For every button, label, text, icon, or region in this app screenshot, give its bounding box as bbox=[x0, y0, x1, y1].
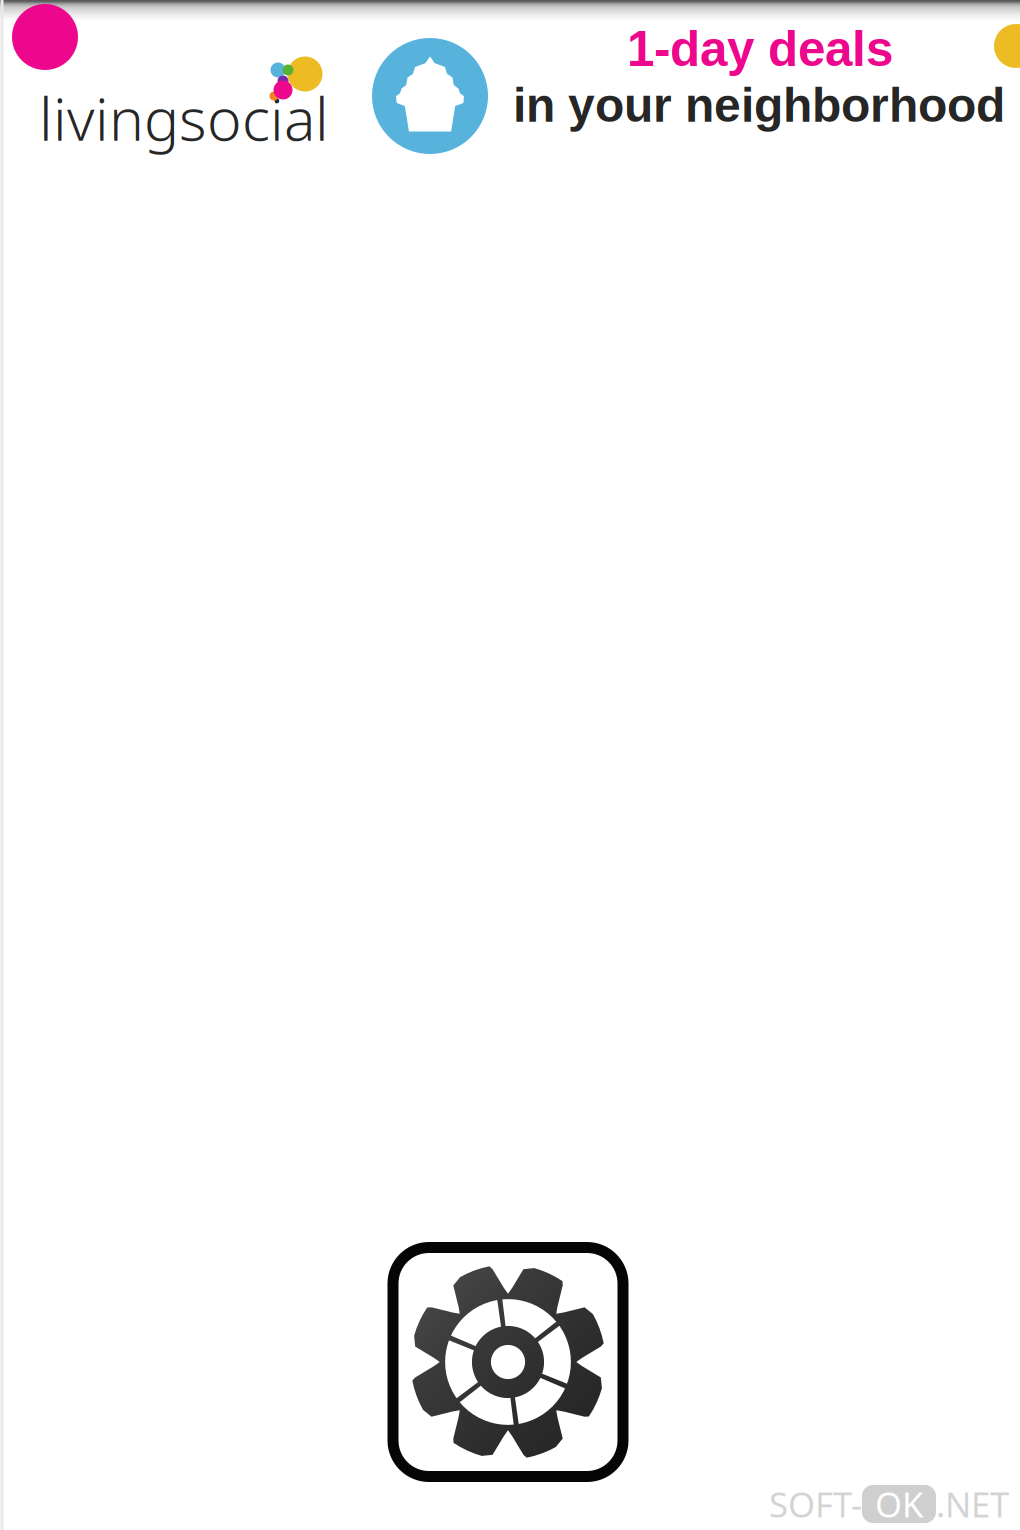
staticText: 1-day deals bbox=[627, 21, 893, 76]
staticText: OK bbox=[875, 1481, 923, 1527]
staticText: in your neighborhood bbox=[513, 78, 1005, 132]
staticText: livingsocial bbox=[39, 79, 329, 157]
staticText: .NET bbox=[936, 1481, 1009, 1527]
staticText: SOFT- bbox=[769, 1481, 862, 1527]
button[interactable]: Image placeholder bbox=[387, 1242, 628, 1482]
